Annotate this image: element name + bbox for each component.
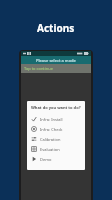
other: Demo xyxy=(31,156,37,162)
staticText: Please select a mode xyxy=(36,58,76,63)
button[interactable]: Infra: Install xyxy=(31,114,81,124)
staticText: Infra: Install xyxy=(40,117,63,122)
staticText: What do you want to do? xyxy=(31,105,81,110)
button[interactable]: Calibration xyxy=(31,134,81,144)
other: Infra: Check xyxy=(31,126,37,132)
button[interactable]: Infra: Check xyxy=(31,124,81,134)
button[interactable]: Evaluation xyxy=(31,144,81,154)
other: Calibration xyxy=(31,136,37,142)
staticText: Tap to continue xyxy=(24,66,54,71)
staticText: Calibration xyxy=(40,137,61,142)
button[interactable]: Demo xyxy=(31,154,81,164)
staticText: Demo xyxy=(40,157,52,162)
button[interactable]: Please select a mode xyxy=(21,56,91,64)
other: Evaluation xyxy=(31,146,37,152)
staticText: Evaluation xyxy=(40,147,60,152)
other: Infra: Install xyxy=(31,116,37,122)
staticText: Infra: Check xyxy=(40,127,63,132)
staticText: Actions xyxy=(37,21,75,35)
